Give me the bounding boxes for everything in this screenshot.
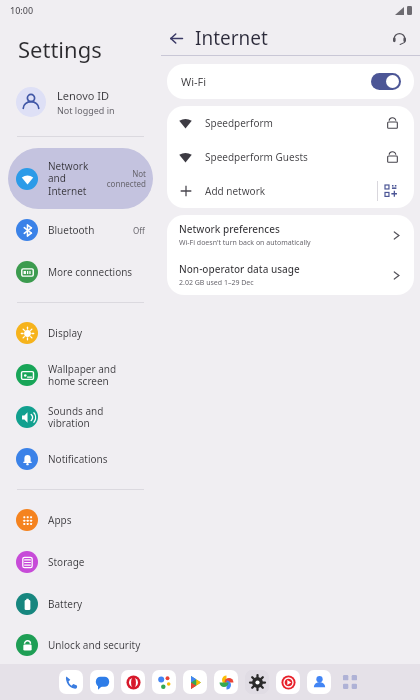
button[interactable]: photos <box>214 670 238 694</box>
button[interactable]: ytmusic <box>276 670 300 694</box>
staticText: Bluetooth <box>48 223 129 237</box>
staticText: Lenovo ID <box>57 88 110 103</box>
button[interactable]: play <box>183 670 207 694</box>
button[interactable]: Network preferences <box>167 215 414 255</box>
staticText: Sounds and vibration <box>48 404 145 430</box>
button[interactable]: Storage <box>8 541 153 583</box>
button[interactable]: Speedperform Guests <box>167 140 414 174</box>
button[interactable]: Wallpaper and home screen <box>8 354 153 396</box>
staticText: Display <box>48 326 145 340</box>
button[interactable]: contacts <box>307 670 331 694</box>
button[interactable]: Notifications <box>8 438 153 480</box>
button[interactable]: Apps <box>8 499 153 541</box>
button[interactable]: msg <box>90 670 114 694</box>
staticText: 10:00 <box>10 4 34 16</box>
button[interactable]: opera <box>121 670 145 694</box>
button[interactable]: phone <box>59 670 83 694</box>
staticText: Speedperform <box>205 116 387 130</box>
button[interactable]: allapps <box>338 670 362 694</box>
button[interactable]: More connections <box>8 251 153 293</box>
staticText: Settings <box>18 34 102 64</box>
button[interactable]: assist <box>152 670 176 694</box>
staticText: Internet <box>195 25 268 51</box>
staticText: Storage <box>48 555 145 569</box>
staticText: Wallpaper and home screen <box>48 362 145 388</box>
button[interactable]: Non-operator data usage <box>167 255 414 295</box>
button[interactable]: Sounds and vibration <box>8 396 153 438</box>
button[interactable]: settings <box>245 670 269 694</box>
staticText: Network preferences <box>179 222 280 236</box>
button[interactable]: Speedperform <box>167 106 414 140</box>
button[interactable]: Scan QR code <box>378 178 404 204</box>
button[interactable]: Back <box>161 23 191 53</box>
staticText: Add network <box>205 184 377 198</box>
staticText: Wi-Fi doesn't turn back on automatically <box>179 238 311 248</box>
staticText: Unlock and security <box>48 638 145 652</box>
button[interactable]: Add network <box>167 174 414 208</box>
button[interactable]: Support <box>384 23 414 53</box>
button[interactable]: Lenovo ID <box>8 80 153 124</box>
staticText: Non-operator data usage <box>179 262 300 276</box>
staticText: Network and Internet <box>48 159 104 198</box>
staticText: Off <box>133 225 145 236</box>
staticText: More connections <box>48 265 145 279</box>
button[interactable]: Wi-Fi <box>167 64 414 99</box>
staticText: Not logged in <box>57 104 115 116</box>
staticText: 2.02 GB used 1–29 Dec <box>179 278 254 288</box>
button[interactable]: Battery <box>8 583 153 625</box>
staticText: Notifications <box>48 452 145 466</box>
staticText: Not connected <box>104 168 146 190</box>
staticText: Wi-Fi <box>181 74 371 89</box>
staticText: Speedperform Guests <box>205 150 387 164</box>
button[interactable]: Bluetooth <box>8 209 153 251</box>
button[interactable]: Display <box>8 312 153 354</box>
button[interactable]: Network and Internet <box>8 148 153 209</box>
button[interactable]: Unlock and security <box>8 625 153 664</box>
staticText: Battery <box>48 597 145 611</box>
staticText: Apps <box>48 513 145 527</box>
